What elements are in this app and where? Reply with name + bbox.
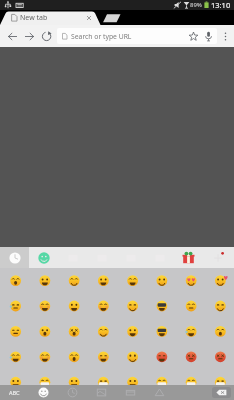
- staticText: ABC: [9, 389, 20, 396]
- staticText: Search or type URL: [71, 32, 132, 41]
- button[interactable]: Voice search: [201, 29, 216, 44]
- button[interactable]: Smileys: [29, 247, 58, 268]
- button[interactable]: ABC: [0, 385, 29, 400]
- button[interactable]: Add new: [203, 247, 232, 268]
- staticText: 89%: [190, 1, 202, 9]
- button[interactable]: Food: [116, 385, 145, 400]
- button[interactable]: Emoji: [29, 385, 58, 400]
- button[interactable]: Recent: [58, 385, 87, 400]
- staticText: 13:10: [211, 0, 231, 10]
- button[interactable]: Back: [4, 28, 21, 45]
- button[interactable]: [0, 10, 101, 25]
- button[interactable]: More options: [217, 28, 234, 45]
- button[interactable]: Search or type URL: [57, 28, 217, 44]
- button[interactable]: Bookmark: [186, 29, 201, 44]
- button[interactable]: Forward: [21, 28, 38, 45]
- button[interactable]: Travel: [145, 385, 174, 400]
- staticText: New tab: [20, 13, 48, 23]
- button[interactable]: Close tab: [84, 13, 94, 23]
- button[interactable]: Stickers: [174, 247, 203, 268]
- button[interactable]: Backspace: [212, 387, 231, 398]
- button[interactable]: Nature: [87, 385, 116, 400]
- button[interactable]: New tab: [101, 12, 122, 23]
- button[interactable]: Recently used: [0, 247, 29, 268]
- button[interactable]: Reload: [38, 28, 55, 45]
